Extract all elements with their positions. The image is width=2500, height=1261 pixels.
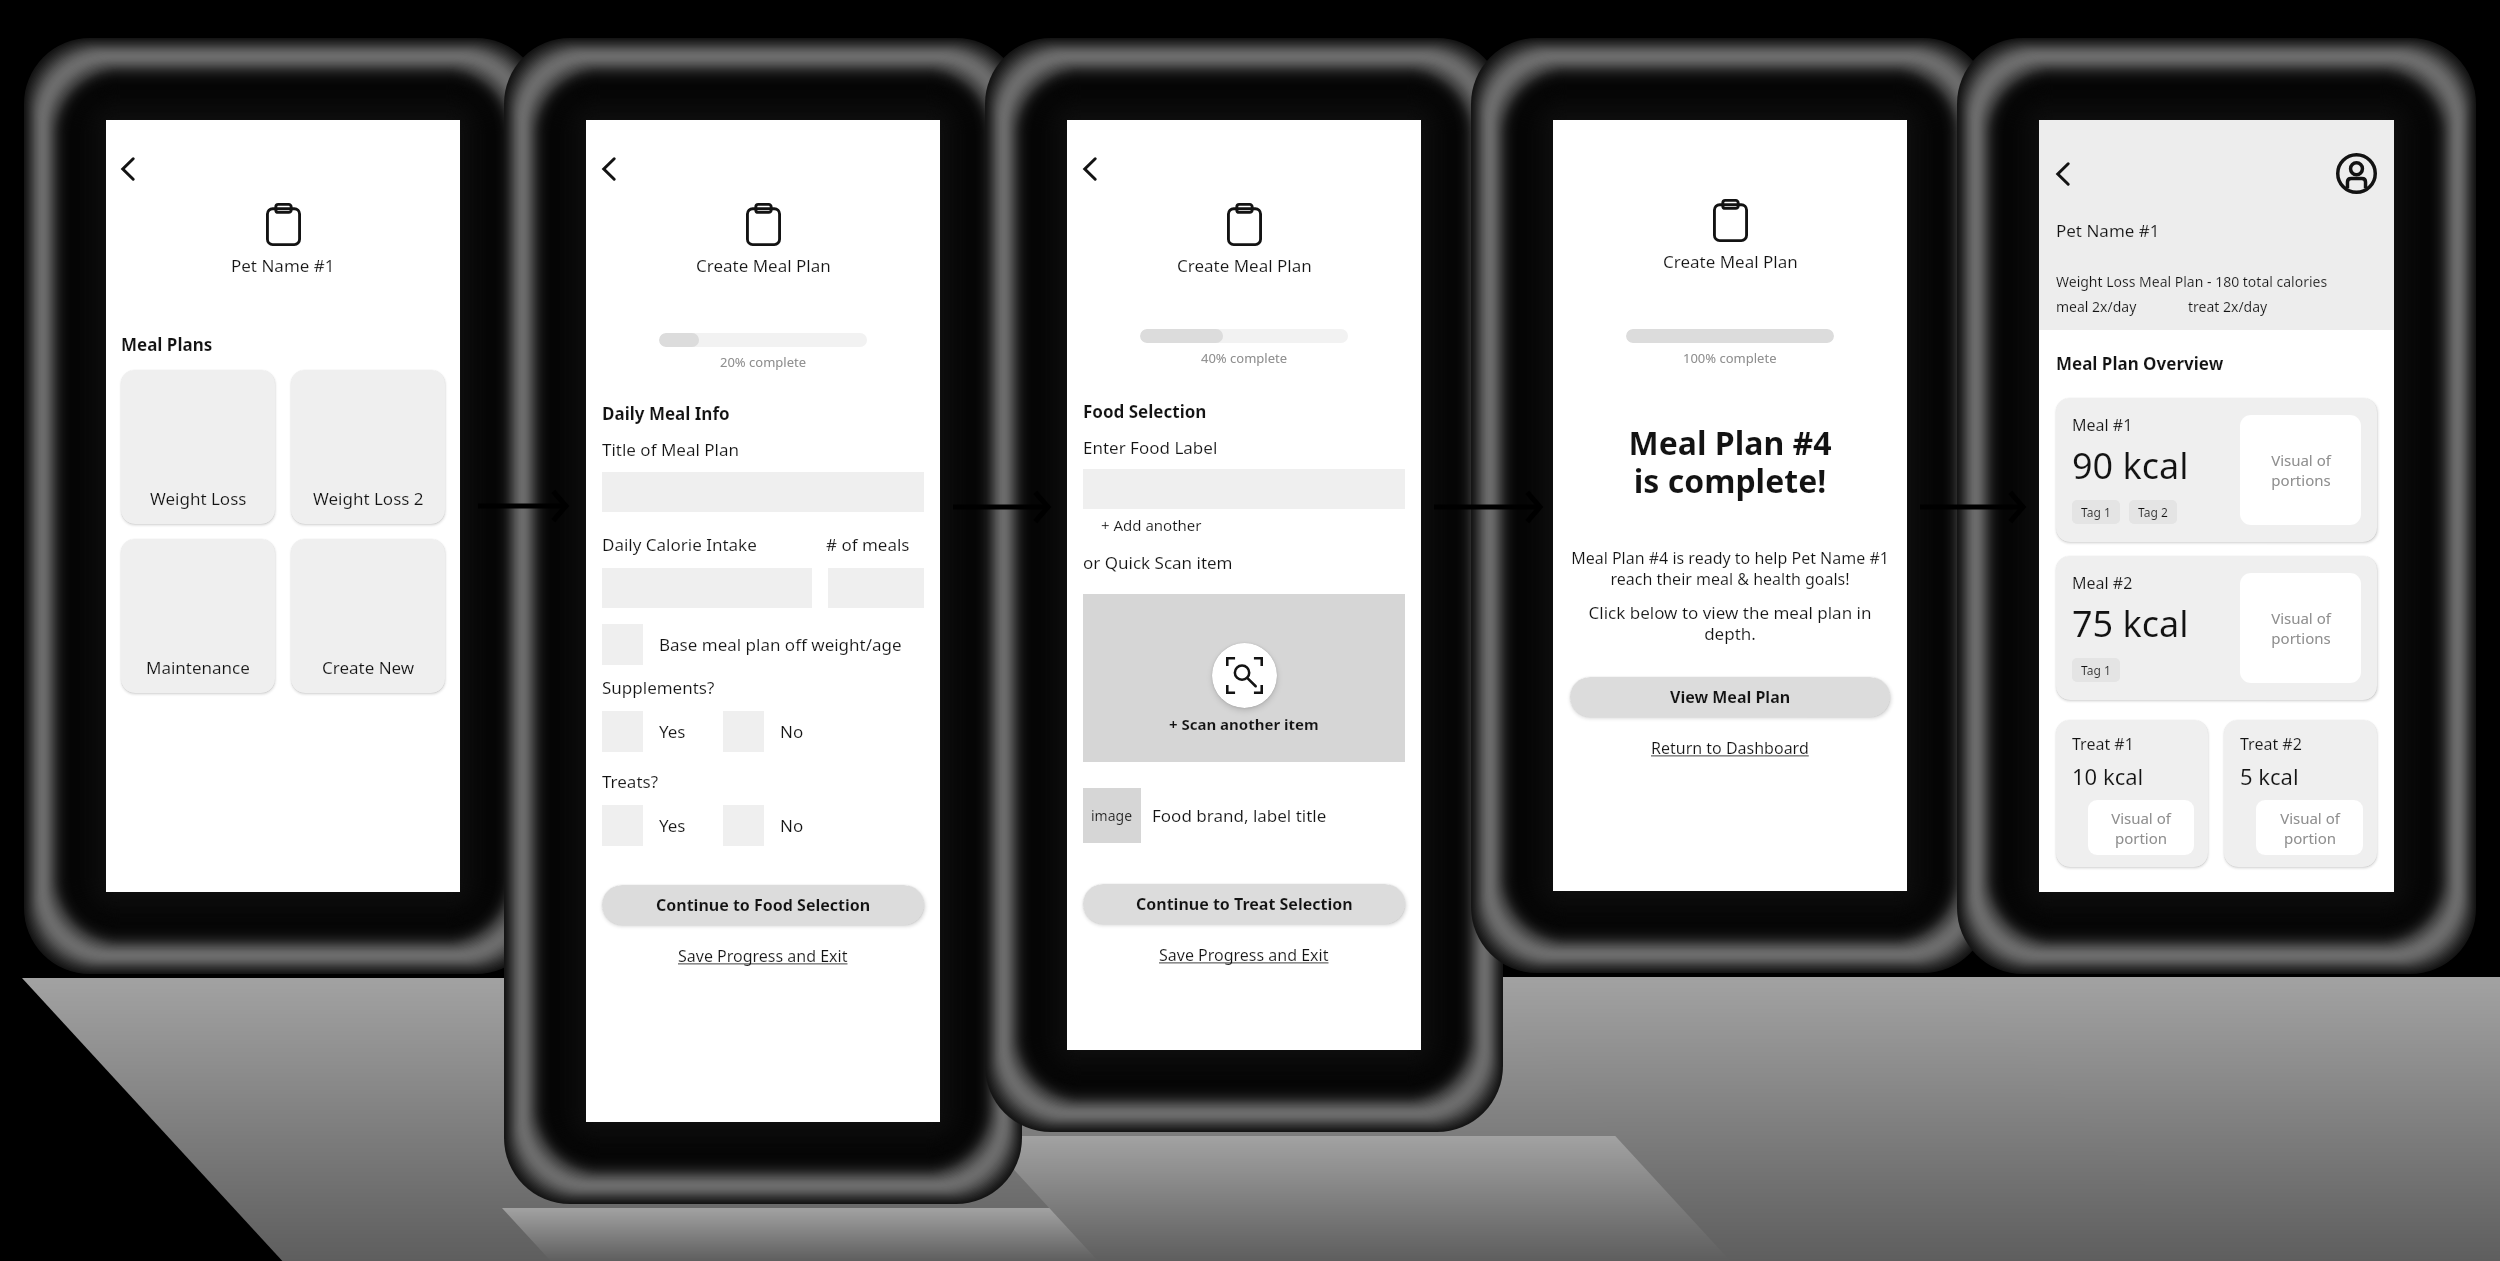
staticText: Weight Loss <box>150 487 247 510</box>
staticText: Visual of portions <box>2271 450 2331 490</box>
button[interactable]: + Scan another item <box>1083 594 1405 762</box>
button[interactable]: Meal #2 <box>2056 556 2377 700</box>
staticText: Title of Meal Plan <box>602 438 739 461</box>
button[interactable]: Return to Dashboard <box>1563 737 1897 759</box>
staticText: Treats? <box>602 770 659 793</box>
staticText: No <box>780 814 804 837</box>
staticText: Yes <box>659 814 686 837</box>
staticText: Tag 2 <box>2138 504 2168 520</box>
staticText: Visual of portion <box>2111 808 2171 848</box>
staticText: Visual of portion <box>2280 808 2340 848</box>
staticText: Save Progress and Exit <box>1159 944 1329 966</box>
button[interactable]: Back <box>2056 160 2090 188</box>
staticText: + Add another <box>1101 515 1202 535</box>
staticText: Pet Name #1 <box>2056 219 2160 242</box>
staticText: Create Meal Plan <box>1177 254 1312 277</box>
staticText: Create Meal Plan <box>696 254 831 277</box>
staticText: or Quick Scan item <box>1083 551 1233 574</box>
button[interactable]: Weight Loss 2 <box>291 370 445 524</box>
staticText: image <box>1091 806 1133 825</box>
staticText: Weight Loss 2 <box>313 487 424 510</box>
staticText: Click below to view the meal plan in dep… <box>1563 601 1897 645</box>
button[interactable]: View Meal Plan <box>1570 677 1890 717</box>
button[interactable]: Back <box>121 156 155 182</box>
button[interactable]: Profile <box>2336 153 2377 194</box>
staticText: + Scan another item <box>1169 714 1319 734</box>
staticText: Continue to Food Selection <box>656 894 871 916</box>
staticText: Yes <box>659 720 686 743</box>
staticText: Tag 1 <box>2081 662 2111 678</box>
staticText: Pet Name #1 <box>231 254 335 277</box>
button[interactable]: Treat #2 <box>2224 720 2377 867</box>
staticText: Food brand, label title <box>1152 804 1327 827</box>
button[interactable]: Meal #1 <box>2056 398 2377 542</box>
button[interactable]: + Add another <box>1083 515 1202 535</box>
button[interactable]: Save Progress and Exit <box>1083 944 1405 966</box>
staticText: 20% complete <box>720 353 807 371</box>
button[interactable]: Back <box>1083 156 1117 182</box>
staticText: Treat #1 <box>2072 733 2134 755</box>
staticText: 10 kcal <box>2072 761 2144 791</box>
staticText: 5 kcal <box>2240 761 2299 791</box>
staticText: Weight Loss Meal Plan - 180 total calori… <box>2056 272 2328 291</box>
staticText: 90 kcal <box>2072 441 2189 490</box>
button[interactable]: Continue to Treat Selection <box>1083 884 1405 924</box>
staticText: Food Selection <box>1083 400 1207 423</box>
staticText: Meal Plan Overview <box>2056 352 2224 375</box>
staticText: Enter Food Label <box>1083 436 1218 459</box>
staticText: Tag 1 <box>2081 504 2111 520</box>
staticText: Supplements? <box>602 676 715 699</box>
staticText: # of meals <box>826 533 910 556</box>
staticText: Treat #2 <box>2240 733 2302 755</box>
staticText: No <box>780 720 804 743</box>
button[interactable]: Create New <box>291 539 445 693</box>
staticText: Return to Dashboard <box>1651 737 1809 759</box>
staticText: 75 kcal <box>2072 599 2189 648</box>
staticText: Meal Plan #4 is ready to help Pet Name #… <box>1563 547 1897 590</box>
staticText: Meal Plan #4 is complete! <box>1563 421 1897 502</box>
button[interactable]: Save Progress and Exit <box>602 945 924 967</box>
button[interactable]: Treat #1 <box>2056 720 2208 867</box>
button[interactable]: Maintenance <box>121 539 275 693</box>
staticText: Base meal plan off weight/age <box>659 633 902 656</box>
staticText: Visual of portions <box>2271 608 2331 648</box>
staticText: Save Progress and Exit <box>678 945 848 967</box>
staticText: Daily Calorie Intake <box>602 533 826 556</box>
staticText: View Meal Plan <box>1670 686 1791 708</box>
button[interactable]: Weight Loss <box>121 370 275 524</box>
staticText: Create Meal Plan <box>1663 250 1798 273</box>
staticText: Daily Meal Info <box>602 402 730 425</box>
staticText: Meal Plans <box>121 333 213 356</box>
staticText: Continue to Treat Selection <box>1136 893 1353 915</box>
staticText: Maintenance <box>146 656 250 679</box>
button[interactable]: Continue to Food Selection <box>602 885 924 925</box>
staticText: Create New <box>322 656 415 679</box>
staticText: 40% complete <box>1201 349 1288 367</box>
button[interactable]: Back <box>602 156 636 182</box>
staticText: Meal #2 <box>2072 572 2133 594</box>
staticText: treat 2x/day <box>2188 297 2268 316</box>
staticText: Meal #1 <box>2072 414 2133 436</box>
staticText: 100% complete <box>1683 349 1777 367</box>
staticText: meal 2x/day <box>2056 297 2137 316</box>
